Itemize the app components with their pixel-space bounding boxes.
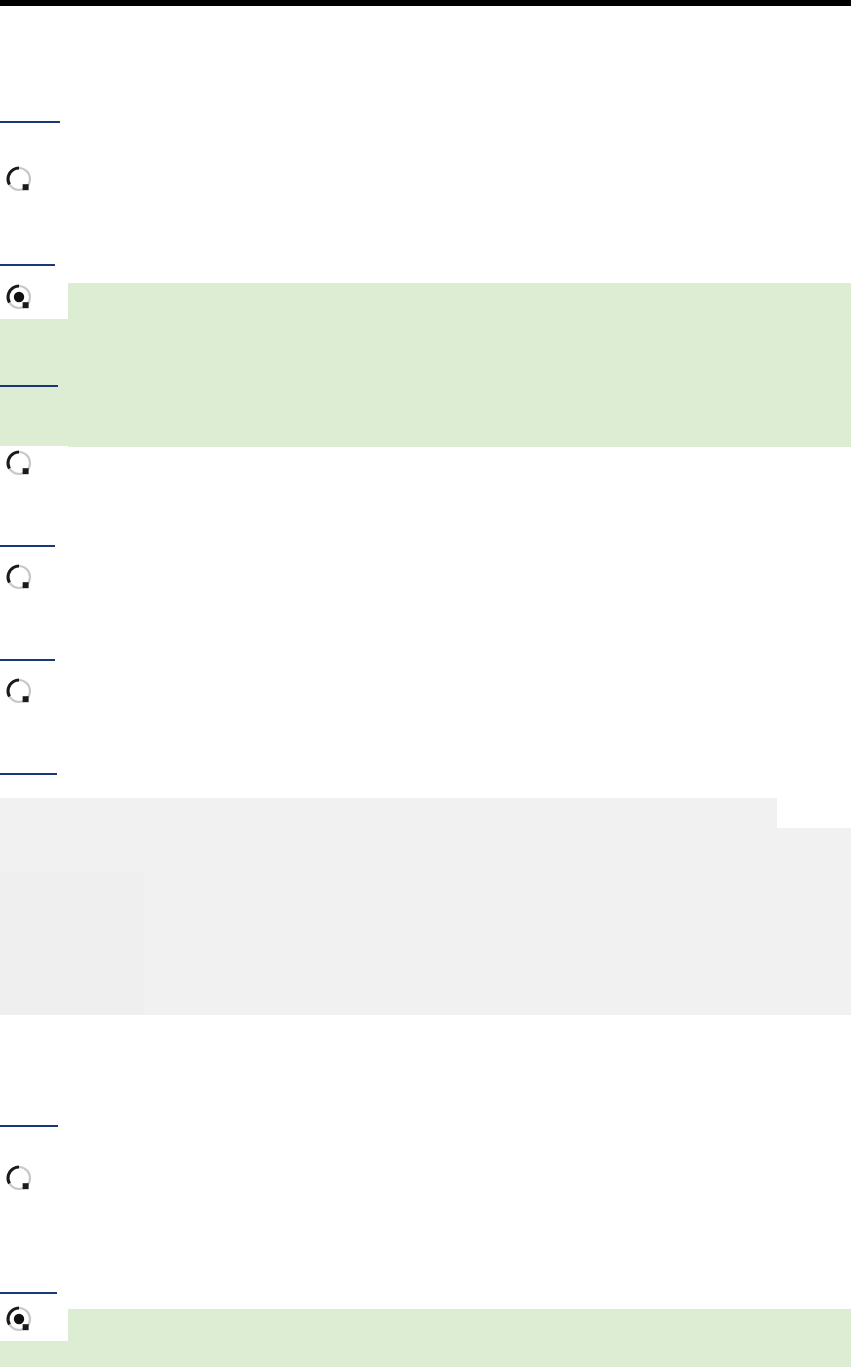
button[interactable]: Section link 7 (0, 1105, 58, 1129)
button[interactable]: Section link 6 (0, 753, 57, 777)
button[interactable]: Section link 8 (0, 1272, 57, 1296)
button[interactable]: Option 2 selected (0, 280, 68, 314)
button[interactable]: Option 4 (0, 560, 68, 594)
button[interactable]: Option 1 (0, 162, 68, 196)
button[interactable]: Option 3 (0, 446, 68, 480)
button[interactable]: Section link 2 (0, 244, 55, 268)
button[interactable]: Option 6 (0, 1161, 68, 1195)
button[interactable]: Section link 3 (0, 365, 58, 389)
button[interactable]: Option 7 selected (0, 1302, 68, 1336)
button[interactable]: Option 5 (0, 674, 68, 708)
button[interactable]: Section link 1 (0, 101, 60, 125)
button[interactable]: Section link 5 (0, 639, 55, 663)
button[interactable]: Section link 4 (0, 525, 55, 549)
